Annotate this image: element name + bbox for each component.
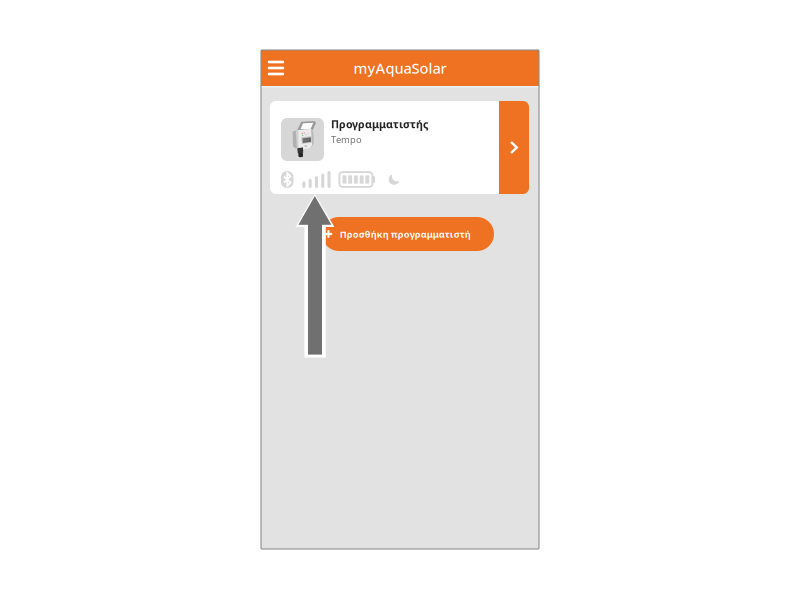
- staticText: Tempo: [331, 133, 362, 146]
- button[interactable]: Open Προγραμματιστής: [499, 101, 529, 194]
- staticText: Προσθήκη προγραμματιστή: [340, 228, 471, 240]
- button[interactable]: Menu: [261, 50, 291, 86]
- button[interactable]: Προσθήκη προγραμματιστή: [322, 217, 494, 251]
- button[interactable]: Προγραμματιστής: [270, 101, 499, 194]
- staticText: Προγραμματιστής: [331, 117, 428, 131]
- staticText: myAquaSolar: [353, 58, 446, 78]
